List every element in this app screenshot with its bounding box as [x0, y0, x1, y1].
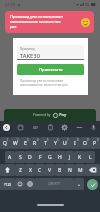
staticText: 88: [85, 2, 90, 7]
staticText: T: [44, 140, 47, 147]
button[interactable]: Y: [50, 137, 60, 149]
button[interactable]: G: [45, 151, 55, 163]
staticText: V: [48, 167, 52, 174]
button[interactable]: Промокод уже использован максимальное ко…: [5, 11, 94, 33]
button[interactable]: W: [10, 137, 20, 149]
staticText: Промокод уже использован максимальное ко…: [10, 14, 66, 29]
staticText: P: [93, 140, 97, 147]
button[interactable]: Powered by: [4, 109, 96, 121]
staticText: QWERTY: [48, 182, 61, 186]
button[interactable]: More options: [76, 124, 83, 131]
staticText: 6: [57, 138, 59, 142]
button[interactable]: Enter: [87, 179, 98, 190]
staticText: Промокод: [20, 47, 35, 51]
staticText: Pay: [59, 112, 67, 118]
staticText: ?123: [4, 182, 12, 187]
button[interactable]: Emoji: [15, 178, 25, 190]
button[interactable]: M: [75, 164, 85, 176]
button[interactable]: Shift: [0, 164, 15, 176]
button[interactable]: Применить: [17, 64, 84, 75]
staticText: L: [89, 154, 92, 161]
button[interactable]: H: [55, 151, 65, 163]
staticText: 21:33: [5, 2, 16, 7]
staticText: Q: [3, 140, 7, 147]
staticText: 3: [27, 138, 29, 142]
staticText: U: [63, 140, 67, 147]
button[interactable]: Space: [35, 178, 74, 190]
staticText: 8: [77, 138, 79, 142]
staticText: 5: [47, 138, 49, 142]
button[interactable]: V: [45, 164, 55, 176]
staticText: K: [78, 154, 82, 161]
button[interactable]: D: [25, 151, 35, 163]
staticText: W: [13, 140, 18, 147]
staticText: 0: [97, 138, 99, 142]
staticText: S: [19, 154, 22, 161]
button[interactable]: Settings: [61, 124, 68, 131]
button[interactable]: N: [65, 164, 75, 176]
button[interactable]: GIF: [32, 124, 40, 132]
staticText: 1: [7, 138, 9, 142]
button[interactable]: Q: [0, 137, 10, 149]
staticText: H: [58, 154, 62, 161]
staticText: N: [68, 167, 72, 174]
button[interactable]: Промокод: [17, 45, 84, 60]
button[interactable]: U: [60, 137, 70, 149]
button[interactable]: R: [30, 137, 40, 149]
button[interactable]: B: [55, 164, 65, 176]
button[interactable]: T: [40, 137, 50, 149]
button[interactable]: Period: [74, 178, 84, 190]
staticText: B: [58, 167, 62, 174]
button[interactable]: C: [35, 164, 45, 176]
button[interactable]: F: [35, 151, 45, 163]
staticText: X: [29, 167, 32, 174]
staticText: A: [8, 154, 12, 161]
staticText: C: [38, 167, 42, 174]
staticText: I: [74, 140, 76, 147]
button[interactable]: Backspace: [85, 164, 100, 176]
button[interactable]: L: [85, 151, 95, 163]
staticText: R: [33, 140, 37, 147]
button[interactable]: A: [5, 151, 15, 163]
staticText: 9: [87, 138, 89, 142]
staticText: F: [39, 154, 42, 161]
button[interactable]: K: [75, 151, 85, 163]
staticText: O: [83, 140, 87, 147]
staticText: J: [69, 154, 71, 161]
button[interactable]: P: [90, 137, 100, 149]
button[interactable]: Voice input: [90, 124, 97, 131]
staticText: E: [24, 140, 27, 147]
staticText: 7: [67, 138, 69, 142]
staticText: Z: [19, 167, 22, 174]
staticText: GIF: [33, 126, 39, 130]
staticText: Промокод уже использован максимальное ко…: [20, 79, 82, 87]
staticText: G: [48, 154, 52, 161]
button[interactable]: S: [15, 151, 25, 163]
staticText: D: [28, 154, 32, 161]
button[interactable]: E: [20, 137, 30, 149]
staticText: 2: [17, 138, 19, 142]
button[interactable]: I: [70, 137, 80, 149]
button[interactable]: ?123: [0, 178, 15, 190]
staticText: Применить: [39, 67, 63, 73]
staticText: Y: [54, 140, 57, 147]
button[interactable]: X: [25, 164, 35, 176]
button[interactable]: O: [80, 137, 90, 149]
button[interactable]: Back: [3, 124, 10, 131]
staticText: Powered by: [33, 113, 51, 117]
button[interactable]: Z: [15, 164, 25, 176]
button[interactable]: Switch language: [25, 178, 35, 190]
button[interactable]: Stickers: [17, 124, 24, 131]
button[interactable]: Clipboard: [47, 124, 54, 131]
staticText: 4: [37, 138, 39, 142]
staticText: TAKE30: [20, 52, 40, 60]
staticText: M: [78, 167, 83, 174]
button[interactable]: J: [65, 151, 75, 163]
